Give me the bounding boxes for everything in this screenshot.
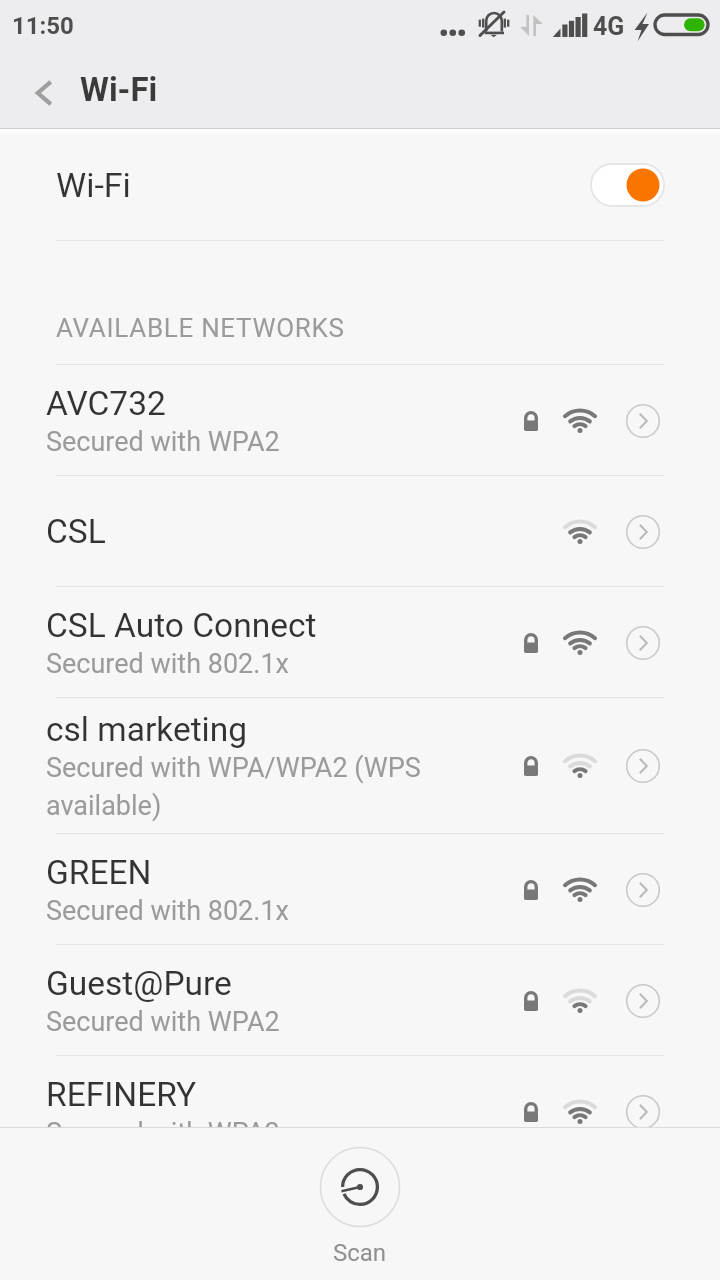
staticText: Secured with WPA/WPA2 (WPS available): [46, 752, 421, 822]
button[interactable]: Network details: [626, 984, 660, 1018]
button[interactable]: CSL: [0, 476, 720, 587]
staticText: CSL Auto Connect: [46, 606, 317, 645]
button[interactable]: Network details: [626, 515, 660, 549]
button[interactable]: Network details: [626, 404, 660, 438]
button[interactable]: Network details: [626, 626, 660, 660]
staticText: Wi-Fi: [80, 70, 158, 109]
button[interactable]: Network details: [626, 749, 660, 783]
button[interactable]: Scan: [0, 1127, 720, 1280]
staticText: 11:50: [12, 12, 74, 40]
staticText: GREEN: [46, 853, 152, 892]
staticText: CSL: [46, 512, 106, 551]
staticText: Secured with 802.1x: [46, 895, 289, 927]
staticText: Wi-Fi: [56, 165, 131, 205]
staticText: Guest@Pure: [46, 964, 232, 1003]
staticText: Secured with WPA2: [46, 426, 280, 458]
button[interactable]: AVC732: [0, 365, 720, 476]
staticText: csl marketing: [46, 710, 248, 749]
button[interactable]: Wi-Fi: [0, 129, 720, 241]
staticText: Scan: [333, 1239, 387, 1267]
button[interactable]: REFINERY: [0, 1056, 720, 1127]
staticText: Secured with 802.1x: [46, 648, 289, 680]
button[interactable]: GREEN: [0, 834, 720, 945]
button[interactable]: Guest@Pure: [0, 945, 720, 1056]
button[interactable]: Network details: [626, 1095, 660, 1127]
staticText: AVC732: [46, 384, 166, 423]
button[interactable]: CSL Auto Connect: [0, 587, 720, 698]
staticText: Secured with WPA2: [46, 1117, 280, 1127]
button[interactable]: Network details: [626, 873, 660, 907]
button[interactable]: csl marketing: [0, 698, 720, 834]
button[interactable]: Back: [8, 57, 80, 129]
staticText: AVAILABLE NETWORKS: [56, 313, 345, 343]
staticText: REFINERY: [46, 1075, 197, 1114]
staticText: Secured with WPA2: [46, 1006, 280, 1038]
staticText: 4G: [593, 12, 625, 41]
